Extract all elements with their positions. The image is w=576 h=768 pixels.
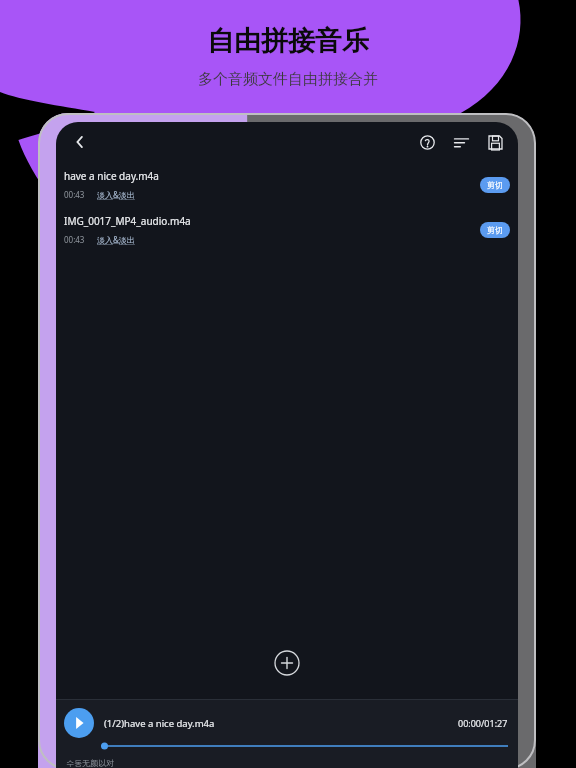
button[interactable]: 剪切 [480, 222, 510, 238]
button[interactable]: Back [64, 126, 96, 158]
staticText: (1/2)have a nice day.m4a [104, 717, 215, 730]
staticText: 淡入&淡出 [97, 234, 135, 245]
button[interactable]: Add audio [274, 650, 300, 676]
staticText: 수동无颜以对 [66, 758, 114, 768]
button[interactable]: Help [412, 127, 442, 157]
button[interactable]: Save [480, 127, 510, 157]
staticText: 淡入&淡出 [97, 189, 135, 200]
staticText: 00:00/01:27 [458, 717, 508, 729]
button[interactable]: 剪切 [480, 177, 510, 193]
staticText: 00:43 [64, 234, 85, 245]
button[interactable]: Play [64, 708, 94, 738]
button[interactable]: Sort [446, 127, 476, 157]
staticText: 自由拼接音乐 [207, 24, 369, 58]
staticText: 多个音频文件自由拼接合并 [198, 70, 378, 89]
button[interactable]: have a nice day.m4a [56, 162, 518, 207]
staticText: have a nice day.m4a [64, 169, 159, 183]
staticText: IMG_0017_MP4_audio.m4a [64, 214, 191, 228]
staticText: 00:43 [64, 189, 85, 200]
staticText: 剪切 [487, 225, 503, 235]
staticText: 剪切 [487, 180, 503, 190]
button[interactable]: IMG_0017_MP4_audio.m4a [56, 207, 518, 252]
